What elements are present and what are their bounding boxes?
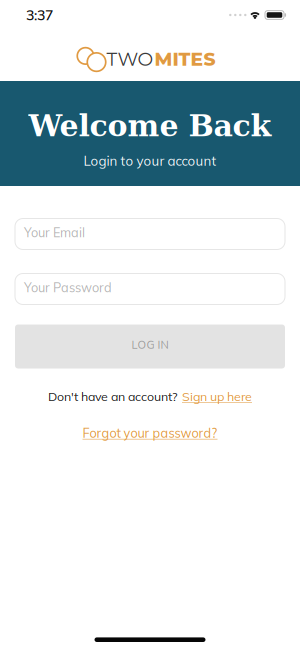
staticText: Don't have an account? (48, 388, 178, 404)
staticText: TWO (106, 48, 153, 70)
button[interactable]: Your Password (15, 273, 285, 304)
button[interactable]: Forgot your password? (82, 425, 217, 441)
staticText: 3:37 (26, 6, 53, 24)
staticText: Your Email (24, 225, 85, 240)
staticText: Login to your account (83, 152, 216, 169)
button[interactable]: LOG IN (15, 324, 285, 368)
staticText: Your Password (24, 280, 112, 295)
staticText: MITES (154, 48, 215, 70)
staticText: Forgot your password? (82, 425, 217, 441)
staticText: LOG IN (131, 338, 168, 351)
button[interactable]: Your Email (15, 218, 285, 249)
staticText: Sign up here (182, 388, 252, 404)
button[interactable]: Sign up here (182, 388, 252, 404)
staticText: Welcome Back (28, 108, 271, 143)
